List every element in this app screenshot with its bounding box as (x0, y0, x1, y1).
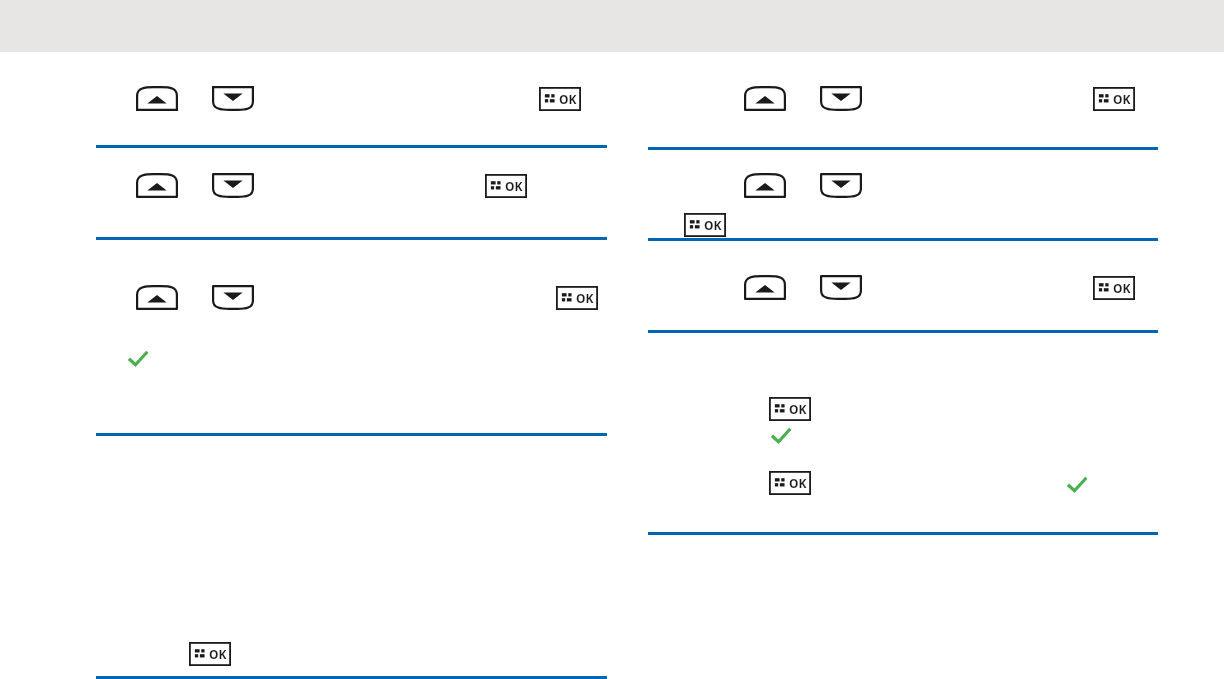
button[interactable]: Scroll down (212, 173, 254, 198)
staticText: OK (704, 217, 722, 233)
button[interactable]: Scroll down (212, 86, 254, 111)
button[interactable]: Menu OK (684, 213, 726, 237)
button[interactable]: Scroll up (744, 275, 786, 300)
button[interactable]: Scroll up (136, 285, 178, 310)
button[interactable]: Scroll up (136, 86, 178, 111)
button[interactable]: Scroll down (820, 173, 862, 198)
button[interactable]: Menu OK (189, 642, 231, 666)
button[interactable]: Scroll up (136, 173, 178, 198)
button[interactable]: Scroll down (820, 275, 862, 300)
staticText: OK (505, 178, 523, 194)
staticText: OK (789, 401, 807, 417)
staticText: OK (209, 646, 227, 662)
staticText: OK (1113, 280, 1131, 296)
staticText: OK (789, 475, 807, 491)
staticText: OK (1113, 91, 1131, 107)
button[interactable]: Scroll down (820, 86, 862, 111)
button[interactable]: Menu OK (1093, 276, 1135, 300)
button[interactable]: Menu OK (485, 174, 527, 198)
button[interactable]: Menu OK (539, 87, 581, 111)
button[interactable]: Scroll up (744, 86, 786, 111)
button[interactable]: Menu OK (556, 286, 598, 310)
button[interactable]: Menu OK (769, 471, 811, 495)
staticText: OK (559, 91, 577, 107)
button[interactable]: Scroll down (212, 285, 254, 310)
button[interactable]: Menu OK (1093, 87, 1135, 111)
button[interactable]: Scroll up (744, 173, 786, 198)
staticText: OK (576, 290, 594, 306)
button[interactable]: Menu OK (769, 397, 811, 421)
